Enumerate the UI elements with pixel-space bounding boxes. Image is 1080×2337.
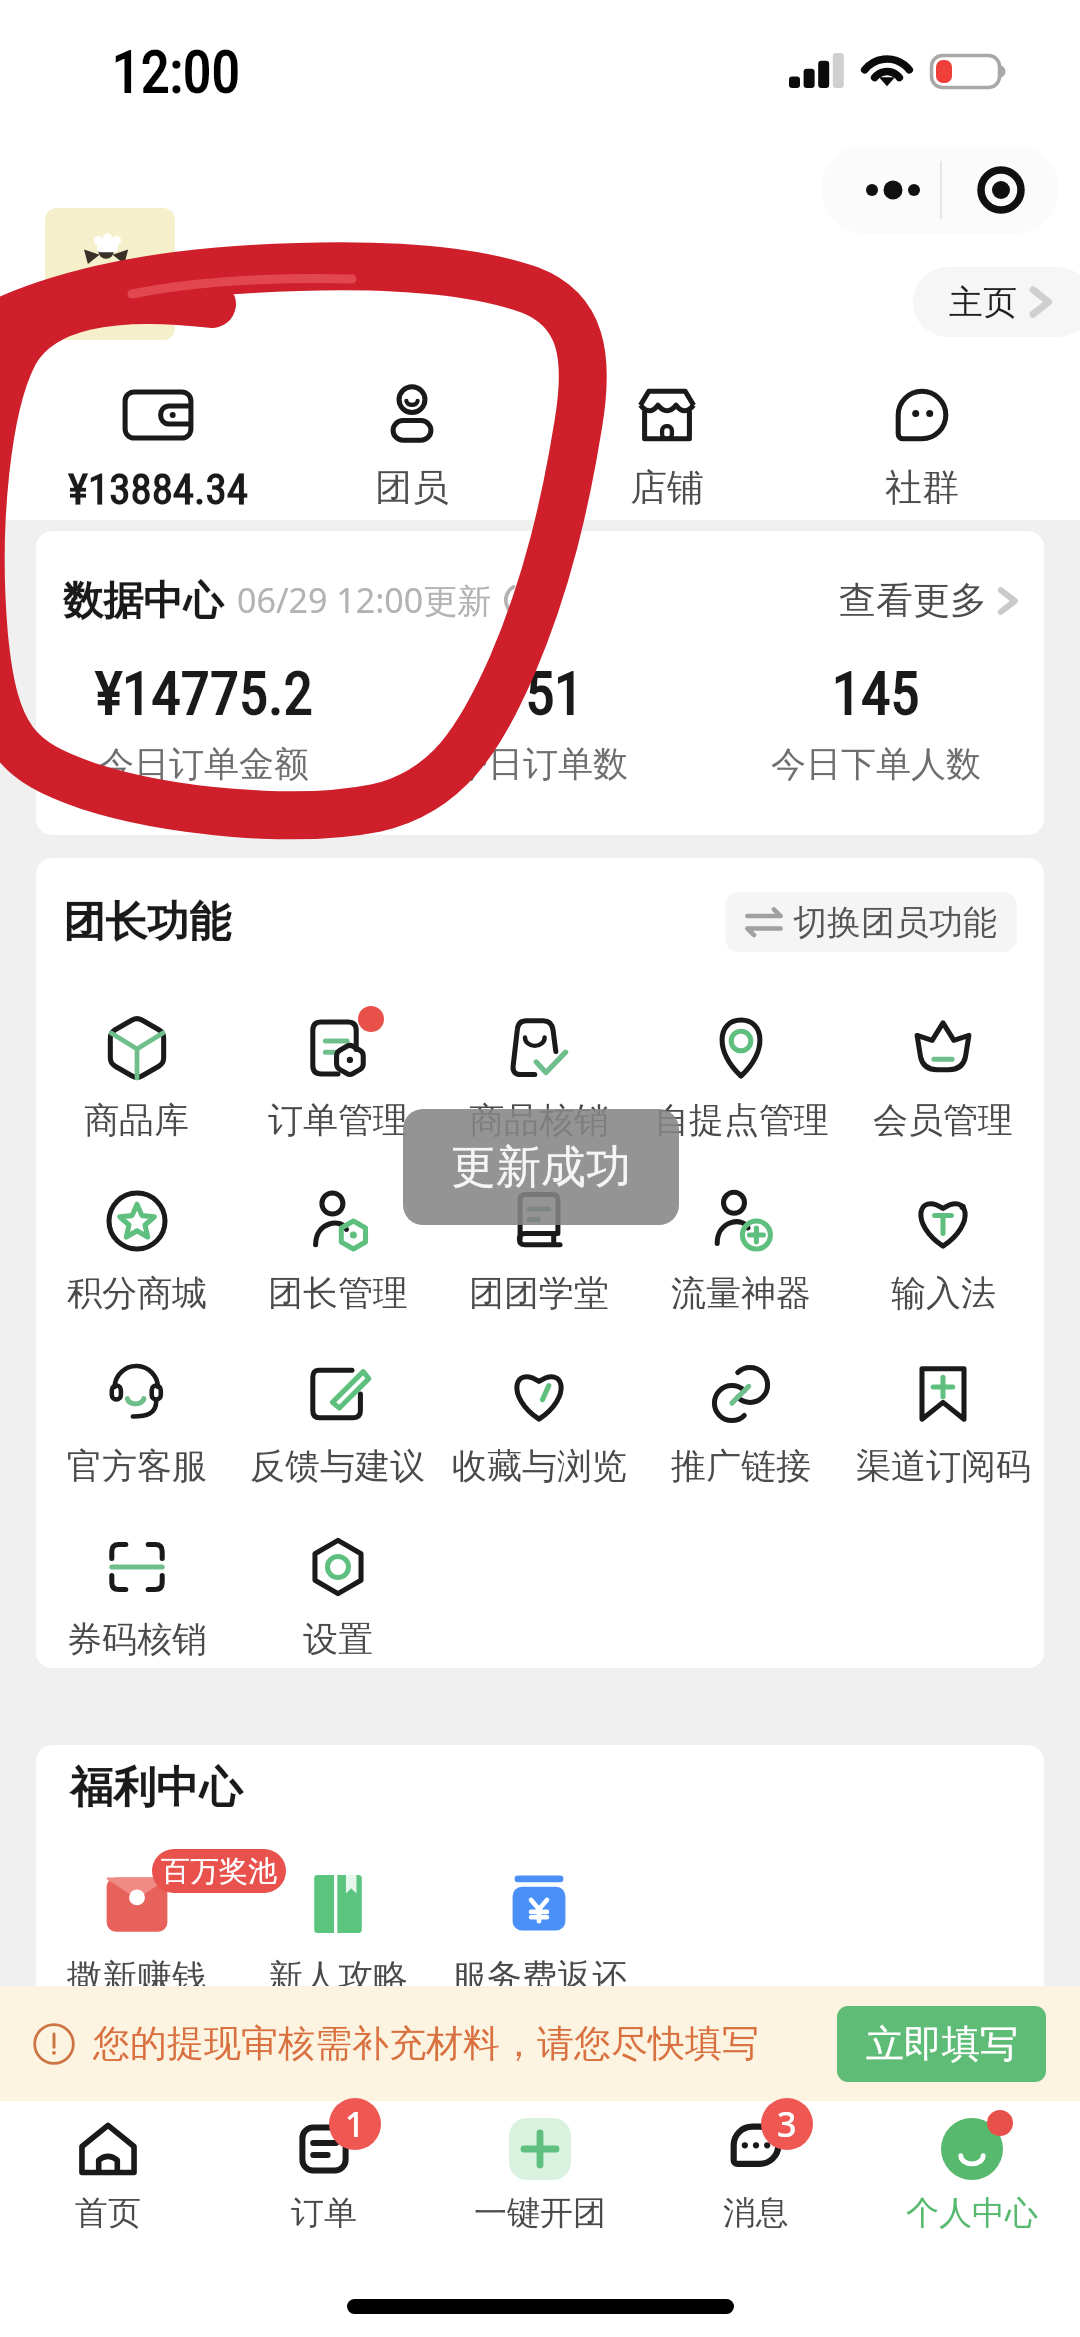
staticText: 团员 [375,464,449,511]
button[interactable]: 一键开团 [432,2101,648,2252]
staticText: 首页 [75,2192,141,2234]
button[interactable]: 主页 [913,267,1080,337]
button[interactable]: 输入法 [842,1185,1044,1315]
staticText: 今日订单金额 [99,742,309,786]
staticText: 主页 [949,281,1017,324]
staticText: 官方客服 [67,1444,207,1488]
staticText: 社群 [885,464,959,511]
button[interactable]: 团员 [285,380,539,511]
staticText: 团长管理 [268,1271,408,1315]
staticText: 今日订单数 [453,742,628,786]
staticText: 会员管理 [873,1098,1013,1142]
button[interactable]: 首页 [0,2101,216,2252]
button[interactable]: 145 [708,659,1044,786]
button[interactable]: 推广链接 [640,1358,842,1488]
button[interactable]: 服务费返还 [438,1869,640,1999]
staticText: 1 [345,2101,365,2147]
staticText: 数据中心 [63,575,223,625]
staticText: 订单管理 [268,1098,408,1142]
button[interactable]: 商品核销 [438,1012,640,1142]
staticText: ¥13884.34 [68,464,248,514]
button[interactable]: 店铺 [539,380,794,511]
other: Refresh [500,579,542,621]
button[interactable]: 团长管理 [237,1185,438,1315]
button[interactable]: 渠道订阅码 [842,1358,1044,1488]
staticText: 渠道订阅码 [856,1444,1031,1488]
staticText: 新人攻略 [268,1955,408,1999]
staticText: 个人中心 [906,2192,1038,2234]
button[interactable]: 流量神器 [640,1185,842,1315]
staticText: 您的提现审核需补充材料，请您尽快填写 [93,2020,759,2067]
button[interactable]: 立即填写 [837,2006,1046,2082]
button[interactable]: 撒新赚钱 [36,1869,237,1999]
staticText: 反馈与建议 [250,1444,425,1488]
button[interactable]: ¥13884.34 [31,380,285,514]
staticText: 查看更多 [839,577,987,624]
staticText: 06/29 12:00更新 [237,577,492,623]
button[interactable]: 订单管理 [237,1012,438,1142]
button[interactable]: 个人中心 [864,2101,1080,2252]
staticText: 撒新赚钱 [67,1955,207,1999]
staticText: 团团学堂 [469,1271,609,1315]
button[interactable]: 设置 [237,1531,438,1661]
staticText: 一键开团 [474,2192,606,2234]
button[interactable]: More [821,145,940,234]
button[interactable]: 券码核销 [36,1531,237,1661]
button[interactable]: 3 [648,2101,864,2252]
button[interactable]: ¥14775.2 [36,659,372,786]
staticText: 145 [832,659,920,728]
button[interactable]: 反馈与建议 [237,1358,438,1488]
button[interactable]: 切换团员功能 [725,892,1017,952]
staticText: 店铺 [630,464,704,511]
staticText: 流量神器 [671,1271,811,1315]
staticText: 自提点管理 [654,1098,829,1142]
staticText: 推广链接 [671,1444,811,1488]
staticText: 12:00 [112,38,241,106]
button[interactable]: 官方客服 [36,1358,237,1488]
button[interactable]: 收藏与浏览 [438,1358,640,1488]
staticText: 券码核销 [67,1617,207,1661]
button[interactable]: 社群 [794,380,1049,511]
staticText: 福利中心 [70,1761,242,1815]
staticText: 立即填写 [866,2020,1018,2068]
staticText: 百万奖池 [161,1853,277,1890]
staticText: 商品库 [84,1098,189,1142]
staticText: 今日下单人数 [771,742,981,786]
button[interactable]: 会员管理 [842,1012,1044,1142]
staticText: 输入法 [891,1271,996,1315]
staticText: 151 [496,659,584,728]
button[interactable]: 商品库 [36,1012,237,1142]
staticText: 订单 [291,2192,357,2234]
staticText: 团长功能 [63,896,231,949]
button[interactable]: 新人攻略 [237,1869,438,1999]
staticText: 积分商城 [67,1271,207,1315]
staticText: 消息 [723,2192,789,2234]
button[interactable]: Close mini program [942,145,1059,234]
staticText: 切换团员功能 [793,901,997,944]
button[interactable]: 自提点管理 [640,1012,842,1142]
staticText: 收藏与浏览 [452,1444,627,1488]
staticText: ¥14775.2 [95,659,313,728]
staticText: 3 [777,2101,797,2147]
staticText: 更新成功 [451,1139,631,1196]
staticText: 服务费返还 [452,1955,627,1999]
staticText: 设置 [303,1617,373,1661]
button[interactable]: 1 [216,2101,432,2252]
button[interactable]: 团团学堂 [438,1185,640,1315]
button[interactable] [45,208,175,340]
button[interactable]: 151 [372,659,708,786]
button[interactable]: 积分商城 [36,1185,237,1315]
staticText: 商品核销 [469,1098,609,1142]
other: Warning [33,2023,75,2065]
button[interactable]: 查看更多 [839,577,1017,624]
button[interactable]: Warning [0,1986,1080,2101]
